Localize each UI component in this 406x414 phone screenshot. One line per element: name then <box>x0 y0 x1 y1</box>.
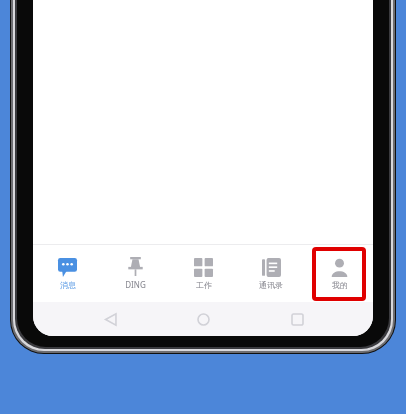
button[interactable]: 消息 <box>33 258 101 290</box>
button[interactable]: 通讯录 <box>237 258 305 290</box>
staticText: 我的 <box>332 280 348 290</box>
button[interactable]: 我的 <box>316 251 362 297</box>
button[interactable]: 工作 <box>169 258 237 290</box>
staticText: DING <box>125 279 146 290</box>
button[interactable]: Home <box>186 302 220 336</box>
staticText: 工作 <box>196 280 212 290</box>
staticText: 消息 <box>60 280 76 290</box>
staticText: 通讯录 <box>259 280 283 290</box>
button[interactable]: Back <box>93 302 127 336</box>
button[interactable]: Recents <box>280 302 314 336</box>
button[interactable]: DING <box>101 257 169 290</box>
